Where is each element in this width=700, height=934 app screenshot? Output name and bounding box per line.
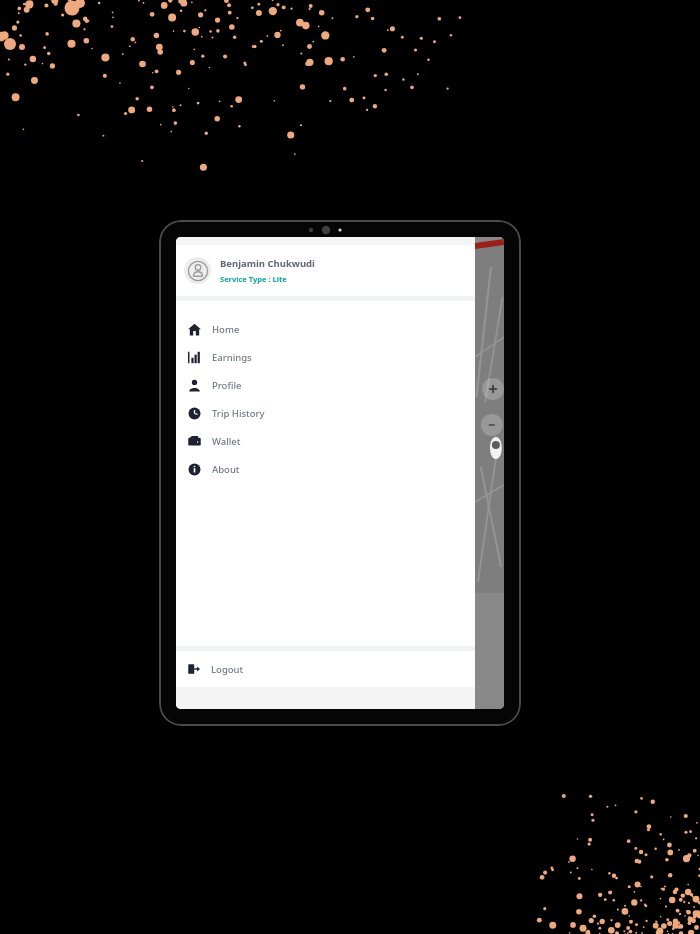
- staticText: Logout: [211, 663, 244, 676]
- button[interactable]: Logout: [176, 651, 475, 687]
- button[interactable]: Trip History: [176, 399, 475, 427]
- staticText: Service Type : Lite: [220, 274, 287, 284]
- staticText: Benjamin Chukwudi: [220, 257, 315, 270]
- staticText: Wallet: [212, 435, 241, 448]
- staticText: Trip History: [212, 407, 265, 420]
- button[interactable]: Profile: [176, 371, 475, 399]
- button[interactable]: Benjamin Chukwudi: [176, 245, 475, 296]
- staticText: About: [212, 463, 240, 476]
- staticText: Profile: [212, 379, 242, 392]
- staticText: Home: [212, 323, 240, 336]
- button[interactable]: About: [176, 455, 475, 483]
- button[interactable]: Earnings: [176, 343, 475, 371]
- button[interactable]: Wallet: [176, 427, 475, 455]
- staticText: Earnings: [212, 351, 252, 364]
- button[interactable]: Home: [176, 315, 475, 343]
